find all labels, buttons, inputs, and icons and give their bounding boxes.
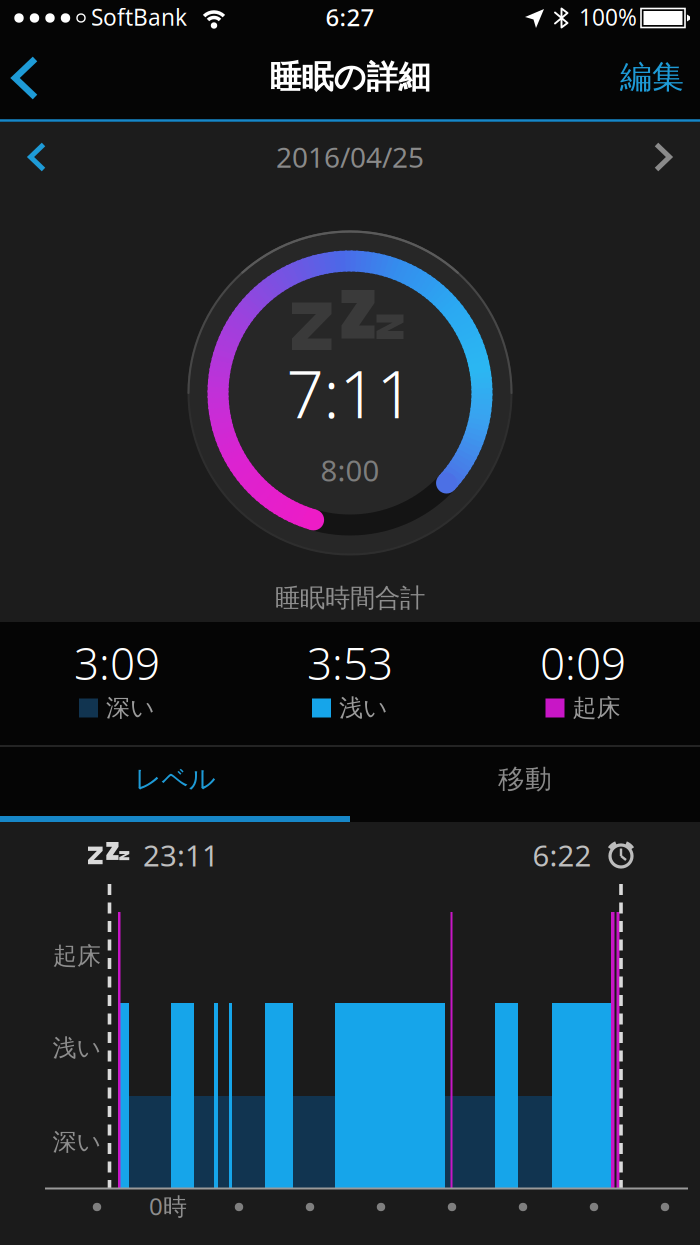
staticText: 6:22 [532, 835, 591, 874]
staticText: 0:09 [540, 633, 626, 693]
staticText: 移動 [498, 763, 552, 795]
staticText: 7:11 [286, 348, 413, 437]
staticText: 深い [52, 1127, 101, 1157]
staticText: レベル [134, 763, 215, 795]
staticText: 0時 [149, 1190, 187, 1222]
staticText: 起床 [572, 693, 620, 723]
button[interactable]: 編集 [602, 47, 700, 107]
button[interactable]: Back [7, 54, 43, 102]
button[interactable]: Previous day [24, 140, 49, 173]
staticText: 深い [106, 693, 155, 723]
button[interactable]: 移動 [350, 743, 700, 815]
staticText: 23:11 [143, 835, 219, 874]
staticText: SoftBank [91, 2, 187, 32]
button[interactable]: Next day [650, 140, 675, 173]
staticText: 編集 [620, 57, 684, 97]
staticText: 3:09 [74, 633, 160, 693]
staticText: 100% [579, 2, 637, 32]
staticText: 浅い [339, 693, 388, 723]
staticText: 睡眠の詳細 [269, 57, 430, 97]
staticText: 浅い [52, 1033, 101, 1063]
button[interactable]: レベル [0, 743, 350, 815]
staticText: 起床 [53, 941, 101, 971]
staticText: 6:27 [325, 1, 374, 33]
staticText: 睡眠時間合計 [275, 582, 425, 613]
staticText: 3:53 [307, 633, 393, 693]
staticText: 8:00 [320, 450, 379, 489]
staticText: 2016/04/25 [276, 138, 424, 176]
